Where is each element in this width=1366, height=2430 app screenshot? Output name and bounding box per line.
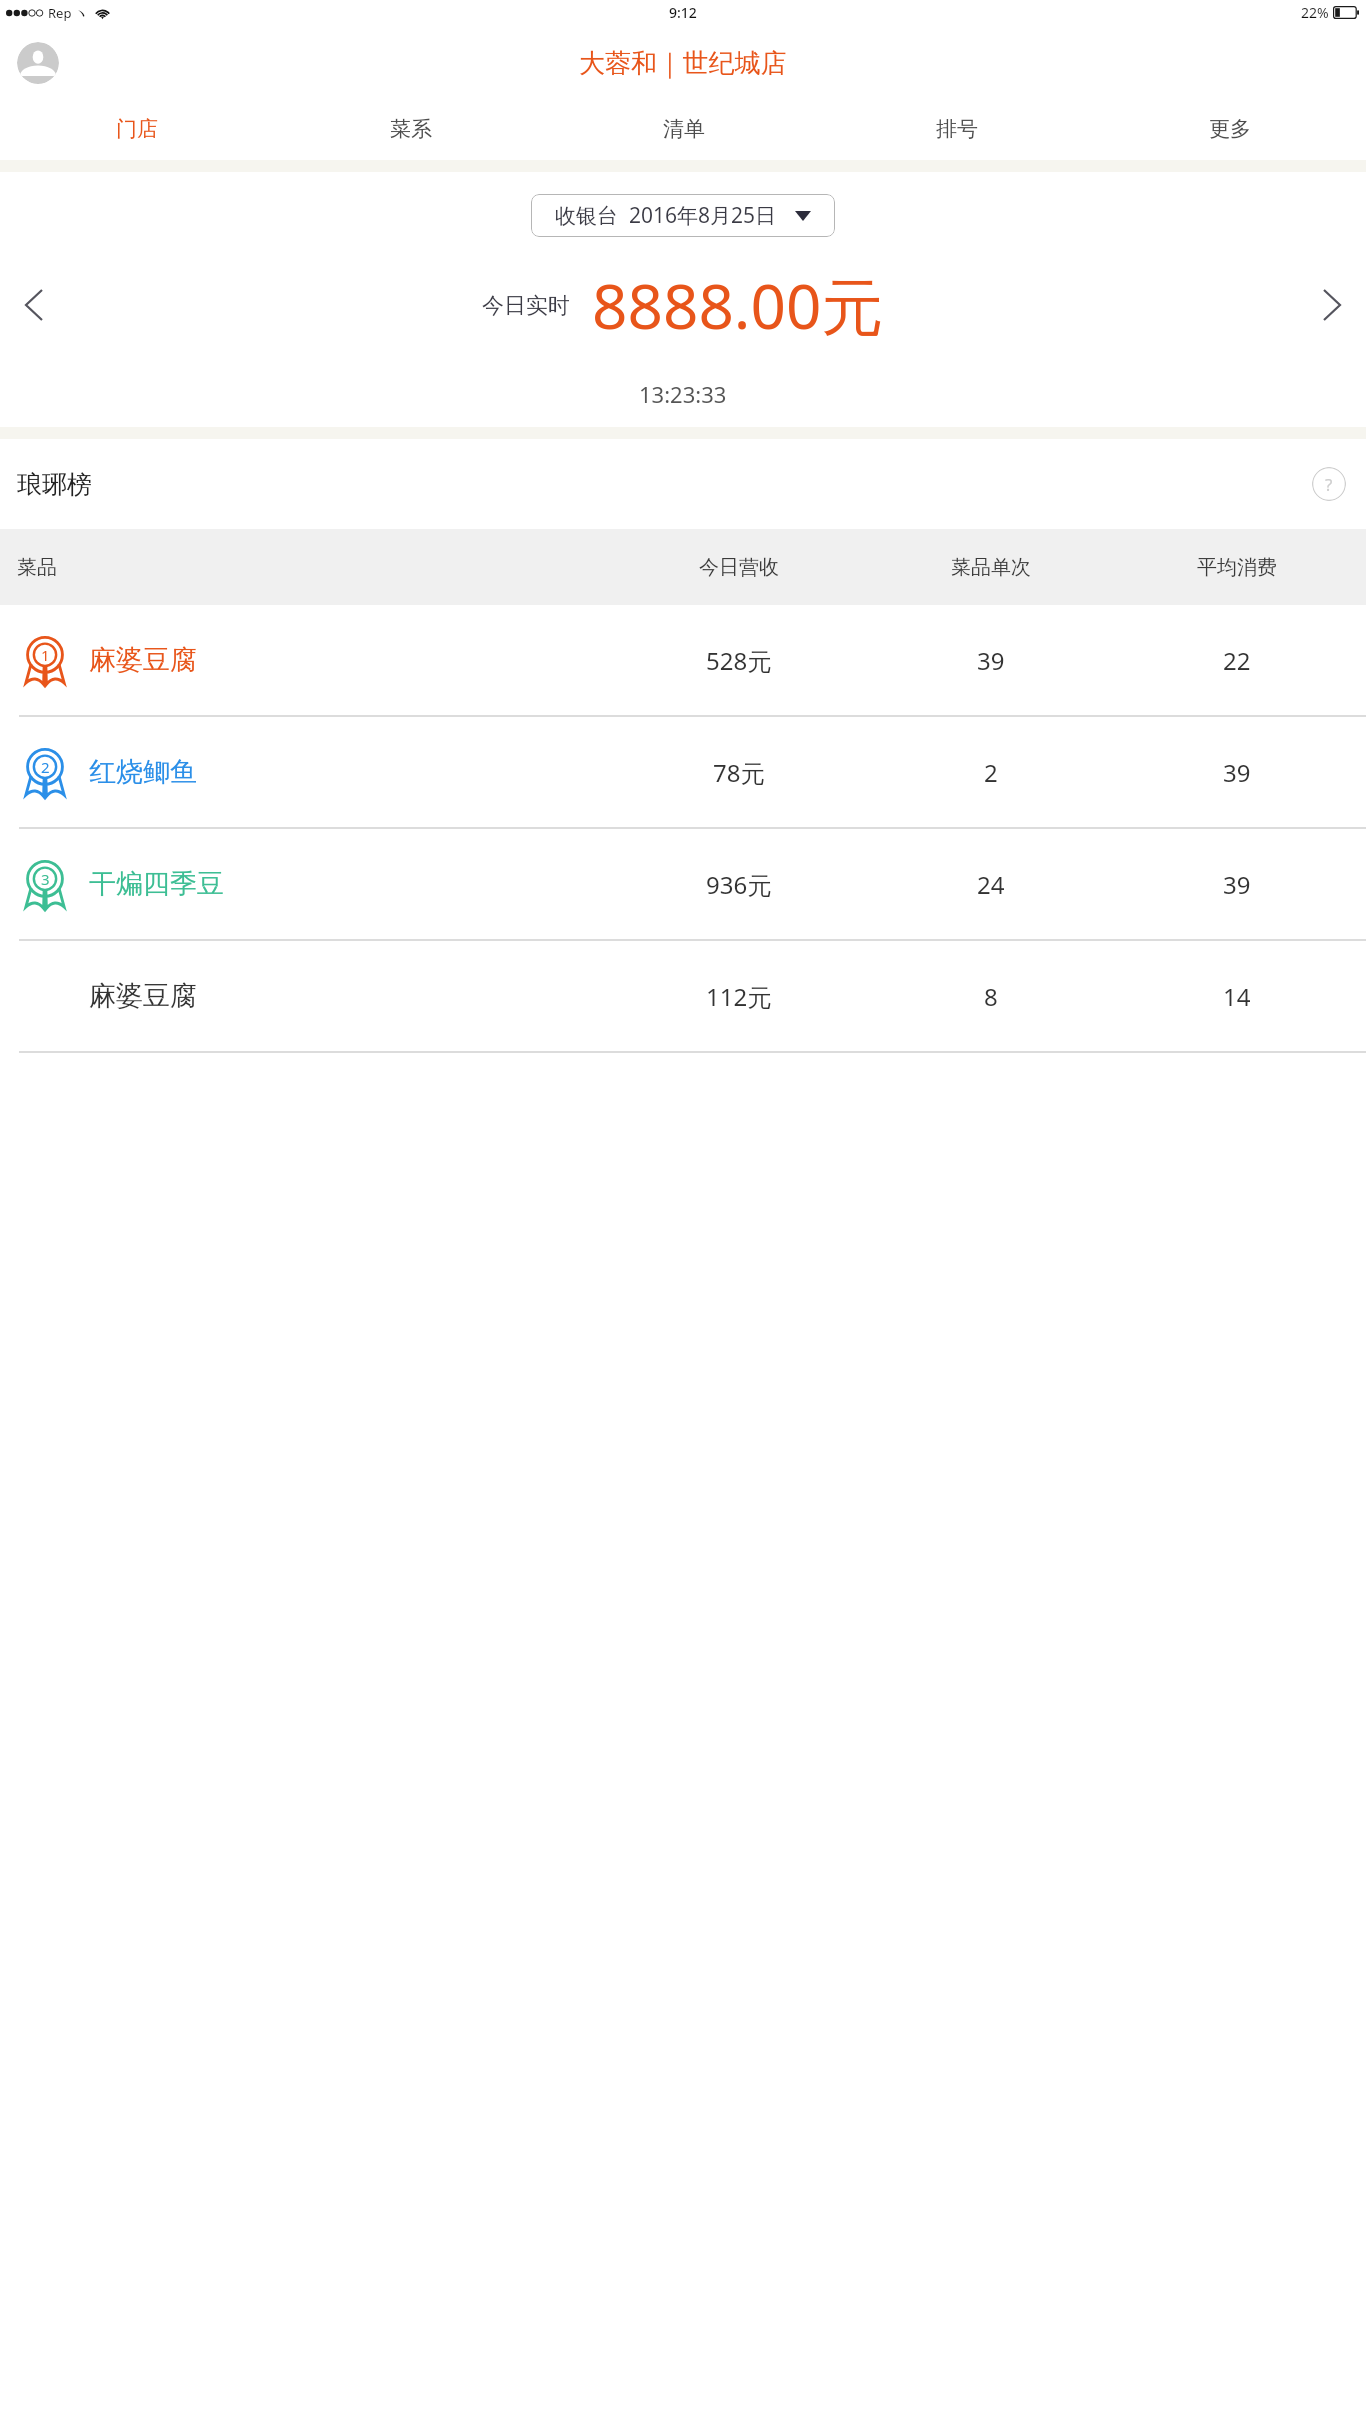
button[interactable]: Profile (17, 42, 59, 84)
button[interactable]: 门店 (0, 101, 274, 157)
staticText: 排号 (936, 116, 978, 142)
staticText: 22% (1301, 3, 1329, 22)
staticText: 39 (1223, 756, 1251, 789)
staticText: 3 (41, 869, 50, 889)
staticText: 清单 (663, 116, 705, 142)
button[interactable]: Help (1312, 467, 1346, 501)
staticText: 2 (41, 757, 50, 777)
staticText: 干煸四季豆 (89, 867, 224, 901)
staticText: 大蓉和｜世纪城店 (579, 47, 787, 80)
staticText: 菜品 (17, 555, 57, 580)
staticText: 麻婆豆腐 (89, 979, 197, 1013)
staticText: 9:12 (669, 3, 697, 22)
staticText: 936元 (706, 868, 772, 901)
staticText: 琅琊榜 (17, 469, 92, 500)
staticText: Rep ヽ (48, 4, 88, 22)
staticText: 24 (977, 868, 1005, 901)
staticText: 39 (1223, 868, 1251, 901)
staticText: 收银台 2016年8月25日 (555, 201, 777, 230)
button[interactable]: Next (1308, 281, 1356, 329)
button[interactable]: 清单 (547, 101, 820, 157)
button[interactable]: 收银台 2016年8月25日 (531, 194, 835, 237)
staticText: 8 (984, 980, 998, 1013)
button[interactable]: 1 (0, 605, 1366, 715)
button[interactable]: 排号 (820, 101, 1093, 157)
button[interactable]: 更多 (1093, 101, 1366, 157)
staticText: 红烧鲫鱼 (89, 755, 197, 789)
staticText: 菜品单次 (951, 555, 1031, 580)
staticText: 1 (41, 645, 50, 665)
staticText: ? (1325, 473, 1333, 496)
staticText: 2 (984, 756, 998, 789)
staticText: 门店 (116, 116, 158, 142)
staticText: 13:23:33 (639, 379, 727, 409)
staticText: 更多 (1209, 116, 1251, 142)
staticText: 麻婆豆腐 (89, 643, 197, 677)
button[interactable]: 2 (0, 717, 1366, 827)
staticText: 今日营收 (699, 555, 779, 580)
staticText: 528元 (706, 644, 772, 677)
staticText: 112元 (706, 980, 772, 1013)
staticText: 39 (977, 644, 1005, 677)
staticText: 8888.00元 (592, 263, 884, 348)
staticText: 菜系 (390, 116, 432, 142)
staticText: 22 (1223, 644, 1251, 677)
button[interactable]: 菜系 (274, 101, 547, 157)
button[interactable]: 麻婆豆腐 (0, 941, 1366, 1051)
staticText: 今日实时 (482, 292, 570, 320)
staticText: 14 (1223, 980, 1251, 1013)
staticText: 平均消费 (1197, 555, 1277, 580)
button[interactable]: 3 (0, 829, 1366, 939)
button[interactable]: Previous (10, 281, 58, 329)
staticText: 78元 (713, 756, 765, 789)
